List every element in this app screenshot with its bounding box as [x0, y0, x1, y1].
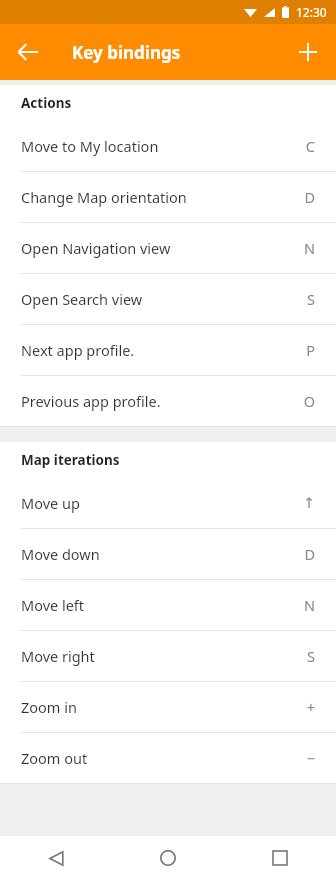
staticText: 12:30 [296, 4, 327, 20]
button[interactable]: Move up [0, 478, 336, 528]
staticText: Next app profile. [21, 340, 297, 360]
staticText: Actions [21, 94, 72, 112]
staticText: N [297, 238, 315, 258]
staticText: Move left [21, 595, 297, 615]
button[interactable]: Home [112, 836, 224, 880]
button[interactable]: Next app profile. [0, 325, 336, 375]
staticText: ↑ [297, 495, 315, 512]
staticText: S [297, 646, 315, 666]
button[interactable]: Open Navigation view [0, 223, 336, 273]
staticText: Key bindings [72, 41, 181, 64]
staticText: Previous app profile. [21, 391, 297, 411]
button[interactable]: Back [0, 24, 56, 80]
staticText: Open Search view [21, 289, 297, 309]
staticText: D [297, 187, 315, 207]
staticText: D [297, 544, 315, 564]
staticText: Move up [21, 493, 297, 513]
staticText: Zoom in [21, 697, 297, 717]
staticText: − [297, 748, 315, 768]
button[interactable]: Move left [0, 580, 336, 630]
staticText: P [297, 340, 315, 360]
button[interactable]: Move to My location [0, 121, 336, 171]
button[interactable]: Previous app profile. [0, 376, 336, 426]
staticText: Move right [21, 646, 297, 666]
button[interactable]: Zoom in [0, 682, 336, 732]
staticText: Move to My location [21, 136, 297, 156]
button[interactable]: Back [0, 836, 112, 880]
button[interactable]: Move down [0, 529, 336, 579]
staticText: S [297, 289, 315, 309]
button[interactable]: Open Search view [0, 274, 336, 324]
staticText: Zoom out [21, 748, 297, 768]
button[interactable]: Change Map orientation [0, 172, 336, 222]
staticText: C [297, 136, 315, 156]
button[interactable]: Add [280, 24, 336, 80]
button[interactable]: Zoom out [0, 733, 336, 783]
staticText: O [297, 391, 315, 411]
staticText: Map iterations [21, 451, 120, 469]
staticText: Change Map orientation [21, 187, 297, 207]
staticText: Open Navigation view [21, 238, 297, 258]
button[interactable]: Recent apps [224, 836, 336, 880]
staticText: N [297, 595, 315, 615]
staticText: Move down [21, 544, 297, 564]
button[interactable]: Move right [0, 631, 336, 681]
staticText: + [297, 697, 315, 717]
